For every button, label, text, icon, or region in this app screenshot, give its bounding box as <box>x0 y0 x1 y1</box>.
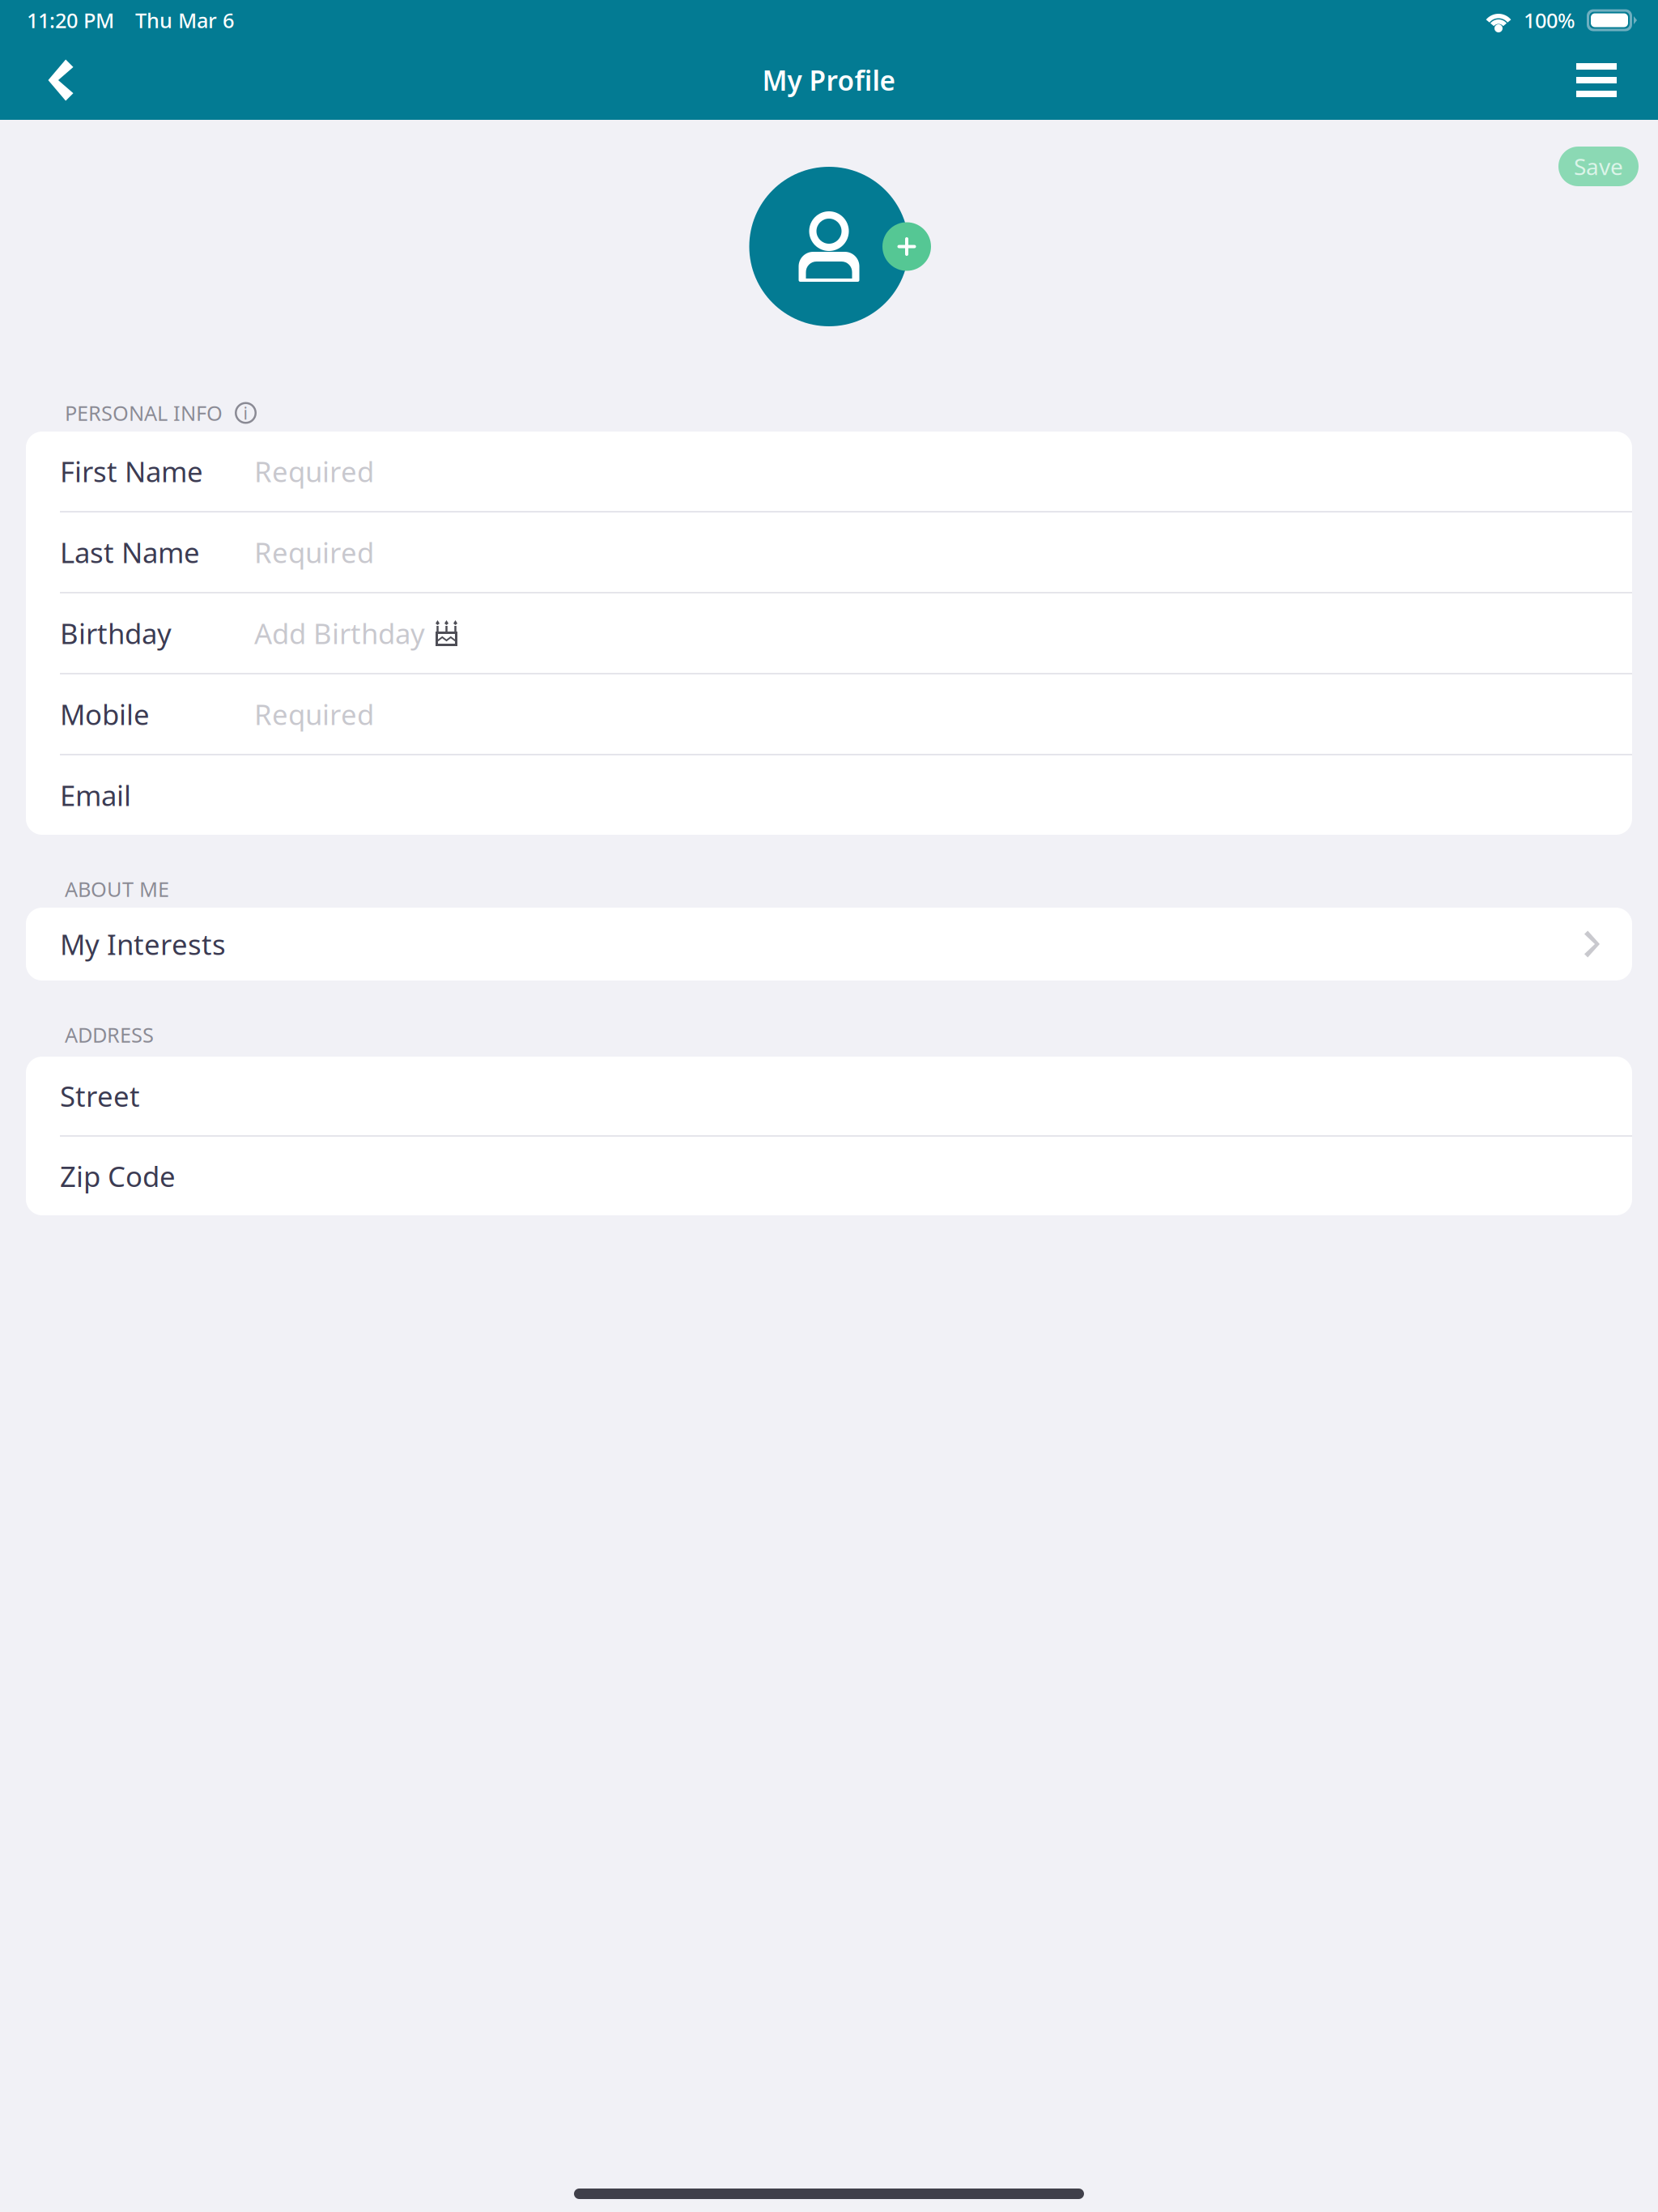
staticText: My Profile <box>762 62 896 98</box>
staticText: Required <box>254 696 374 733</box>
button[interactable]: Save <box>1558 147 1639 186</box>
staticText: Email <box>60 776 131 814</box>
staticText: Add Birthday <box>254 615 425 652</box>
button[interactable]: Street <box>26 1057 1632 1135</box>
staticText: i <box>243 401 248 424</box>
staticText: 11:20 PM <box>27 7 114 34</box>
button[interactable]: Last Name <box>26 513 1632 592</box>
staticText: ABOUT ME <box>65 875 169 903</box>
staticText: Mobile <box>60 696 150 733</box>
staticText: Required <box>254 453 374 490</box>
staticText: Zip Code <box>60 1157 176 1195</box>
staticText: Birthday <box>60 615 172 652</box>
staticText: Save <box>1574 151 1623 181</box>
button[interactable]: Add profile photo <box>727 167 931 326</box>
button[interactable]: First Name <box>26 432 1632 511</box>
button[interactable]: Birthday <box>26 593 1632 673</box>
button[interactable]: Zip Code <box>26 1137 1632 1215</box>
staticText: My Interests <box>60 925 226 963</box>
staticText: ADDRESS <box>65 1021 154 1048</box>
staticText: Thu Mar 6 <box>135 7 234 34</box>
button[interactable]: Email <box>26 755 1632 835</box>
staticText: 100% <box>1524 7 1575 34</box>
staticText: Street <box>60 1077 140 1115</box>
staticText: Required <box>254 534 374 571</box>
staticText: PERSONAL INFO <box>65 399 223 427</box>
button[interactable]: Mobile <box>26 674 1632 754</box>
staticText: Last Name <box>60 534 200 571</box>
staticText: First Name <box>60 453 203 490</box>
button[interactable]: My Interests <box>26 908 1632 981</box>
button[interactable]: Back <box>23 40 99 120</box>
button[interactable]: Menu <box>1558 40 1635 120</box>
